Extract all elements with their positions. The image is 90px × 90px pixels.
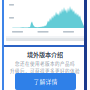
staticText: 您还在使用老版本的产品吗 [15,60,75,66]
staticText: 了解详情 [33,77,57,86]
staticText: 升级后，可获得更多更好的体验 [10,67,80,74]
staticText: 境外版本介绍 [27,50,63,59]
button[interactable]: 了解详情 [15,73,76,90]
